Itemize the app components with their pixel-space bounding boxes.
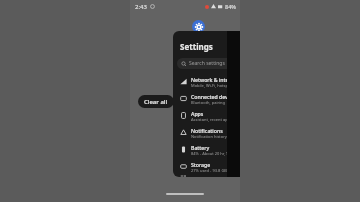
staticText: Notifications	[191, 127, 223, 134]
button[interactable]: Settings	[173, 31, 240, 177]
staticText: Bluetooth, pairing	[191, 100, 226, 105]
staticText: Clear all	[144, 98, 168, 106]
staticText: 84%	[225, 3, 236, 10]
button[interactable]: Battery	[173, 141, 240, 158]
staticText: Storage	[191, 161, 211, 168]
button[interactable]: Notifications	[173, 124, 240, 141]
button[interactable]: Clear all	[138, 95, 174, 108]
staticText: Network & internet	[191, 76, 236, 83]
button[interactable]: Sound & vibration	[173, 175, 240, 177]
staticText: Sound & vibration	[191, 175, 236, 177]
staticText: Apps	[191, 110, 204, 117]
button[interactable]: Apps	[173, 107, 240, 124]
button[interactable]: Settings app	[192, 20, 205, 33]
staticText: Connected devices	[191, 93, 236, 100]
staticText: Settings	[180, 41, 213, 52]
staticText: 2:43	[135, 3, 147, 11]
staticText: 84% - About 20 hr, 1 min left	[191, 151, 236, 156]
staticText: Search settings	[189, 60, 225, 67]
button[interactable]: Storage	[173, 158, 240, 175]
button[interactable]: Search settings	[177, 58, 236, 69]
staticText: Notification history, conversations	[191, 134, 236, 139]
staticText: Mobile, Wi-Fi, hotspot	[191, 83, 232, 88]
button[interactable]: Network & internet	[173, 73, 240, 90]
button[interactable]: Connected devices	[173, 90, 240, 107]
staticText: Assistant, recent apps, default apps	[191, 117, 236, 122]
staticText: 27% used - 93.8 GB free	[191, 168, 236, 173]
staticText: Battery	[191, 144, 210, 151]
